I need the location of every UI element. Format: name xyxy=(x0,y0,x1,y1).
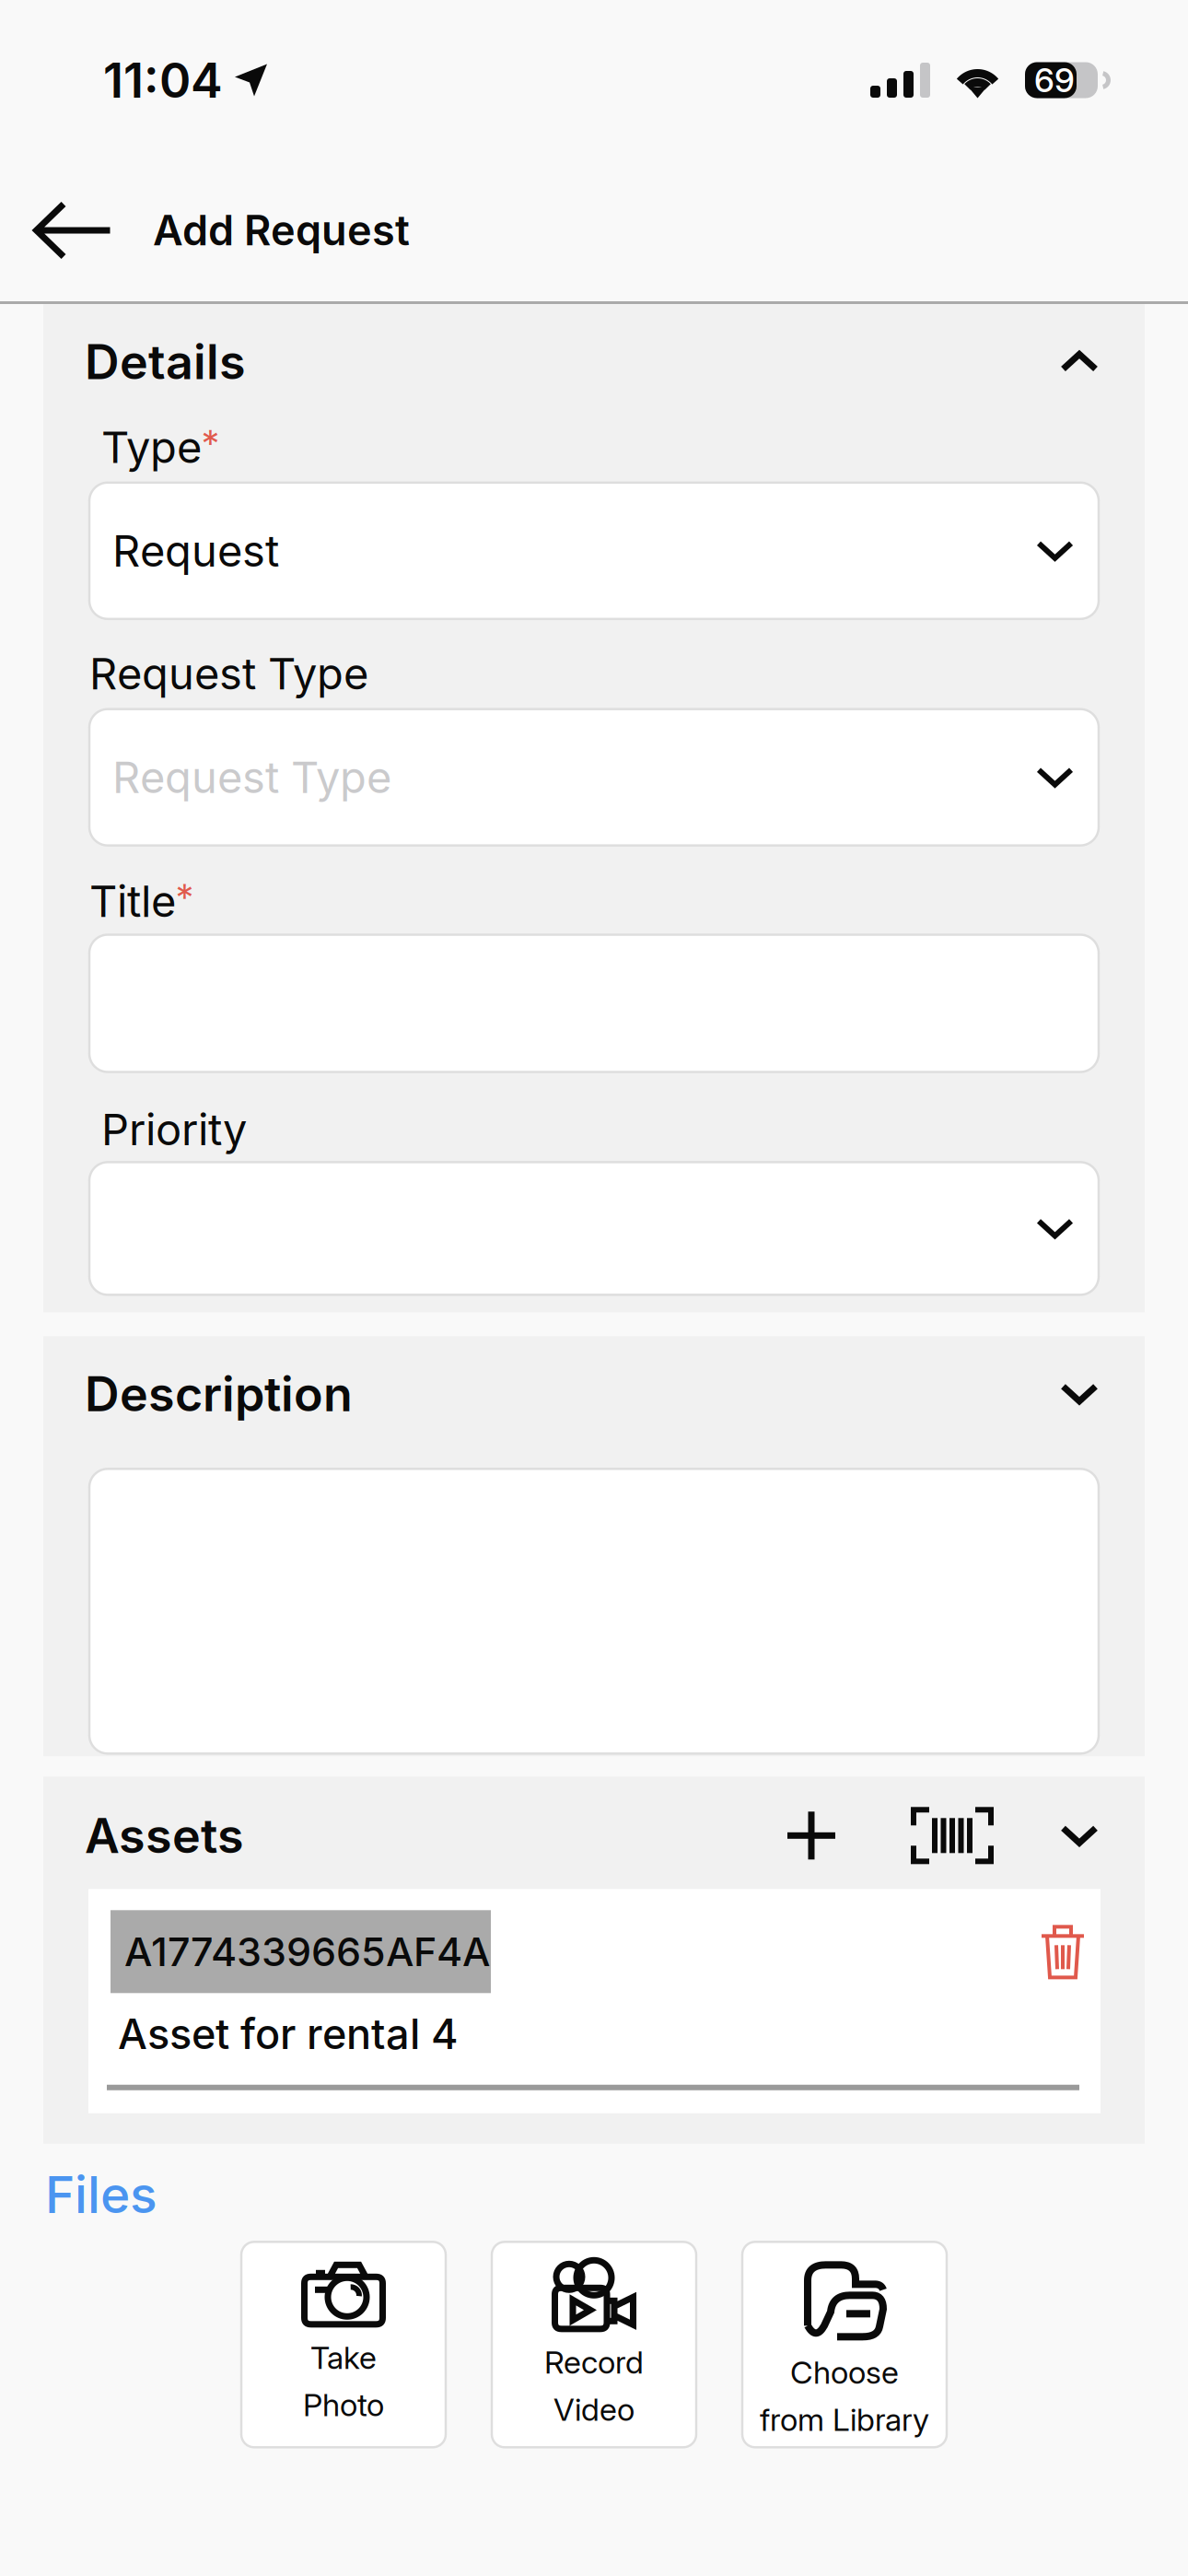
button[interactable]: Collapse Details xyxy=(1053,344,1106,380)
staticText: from Library xyxy=(760,2400,929,2438)
staticText: 11:04 xyxy=(103,51,223,109)
button[interactable]: Add asset xyxy=(782,1806,841,1865)
staticText: Photo xyxy=(303,2386,384,2424)
staticText: Add Request xyxy=(153,205,410,255)
button[interactable]: Back xyxy=(0,184,153,276)
staticText: 69 xyxy=(1034,60,1075,100)
staticText: A1774339665AF4A xyxy=(124,1928,490,1976)
button[interactable]: Take xyxy=(241,2242,446,2447)
button[interactable]: Choose xyxy=(742,2242,947,2447)
staticText: Video xyxy=(553,2390,635,2428)
staticText: Details xyxy=(85,333,246,391)
staticText: Description xyxy=(85,1365,353,1423)
button[interactable]: Record xyxy=(492,2242,696,2447)
button[interactable]: Expand Description xyxy=(1053,1376,1106,1412)
staticText: Asset for rental 4 xyxy=(118,2009,459,2059)
staticText: Request xyxy=(112,525,279,577)
staticText: Title xyxy=(89,875,176,927)
button[interactable]: Delete asset xyxy=(1040,1924,1086,1979)
staticText: * xyxy=(202,421,219,466)
staticText: Type xyxy=(101,421,202,473)
staticText: Choose xyxy=(790,2353,899,2391)
staticText: Request Type xyxy=(112,751,391,803)
button[interactable]: Expand Assets xyxy=(1053,1818,1106,1854)
staticText: Files xyxy=(45,2164,157,2225)
staticText: Priority xyxy=(101,1103,247,1156)
staticText: Record xyxy=(544,2343,644,2381)
staticText: Take xyxy=(310,2339,377,2376)
staticText: Assets xyxy=(85,1807,244,1864)
staticText: Request Type xyxy=(89,648,368,700)
staticText: * xyxy=(176,875,193,920)
button[interactable]: Scan barcode xyxy=(905,1801,999,1870)
